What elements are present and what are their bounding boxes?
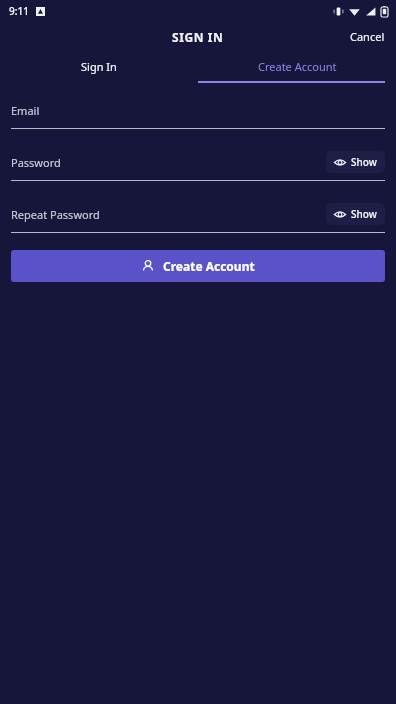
button[interactable]: Show xyxy=(326,151,385,173)
staticText: Cancel xyxy=(350,29,385,44)
staticText: Show xyxy=(351,207,377,221)
button[interactable]: Show xyxy=(326,203,385,225)
staticText: Password xyxy=(11,155,61,170)
staticText: 9:11 xyxy=(9,4,29,18)
staticText: Create Account xyxy=(258,59,337,74)
staticText: Create Account xyxy=(163,258,255,274)
button[interactable]: Create Account xyxy=(198,51,396,81)
staticText: Show xyxy=(351,155,377,169)
staticText: SIGN IN xyxy=(172,29,224,45)
staticText: Repeat Password xyxy=(11,207,100,222)
button[interactable]: Cancel xyxy=(339,24,396,49)
staticText: Email xyxy=(11,103,40,118)
button[interactable]: Sign In xyxy=(0,51,198,81)
button[interactable]: Create Account xyxy=(11,250,385,282)
staticText: Sign In xyxy=(81,59,117,74)
